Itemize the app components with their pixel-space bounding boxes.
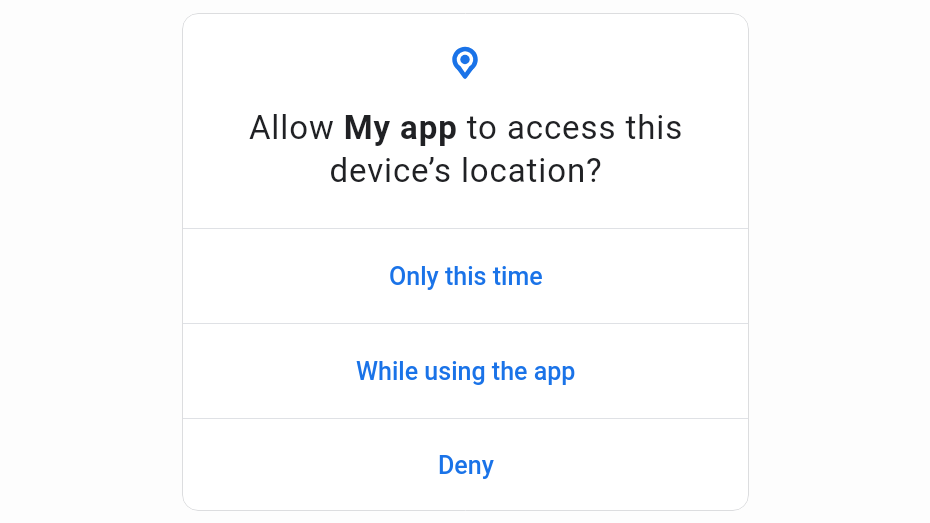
staticText: While using the app bbox=[356, 357, 576, 386]
staticText: Allow My app to access this device’s loc… bbox=[196, 108, 736, 190]
button[interactable]: Deny bbox=[182, 419, 749, 511]
button[interactable]: While using the app bbox=[182, 324, 749, 418]
button[interactable]: Only this time bbox=[182, 229, 749, 323]
staticText: Deny bbox=[438, 451, 494, 480]
staticText: Only this time bbox=[389, 262, 543, 291]
